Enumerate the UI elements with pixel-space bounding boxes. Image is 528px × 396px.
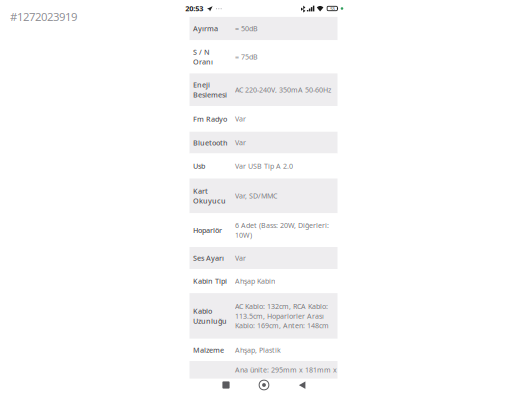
staticText: Var xyxy=(235,253,246,263)
staticText: S / N Oranı xyxy=(193,47,213,67)
staticText: Var xyxy=(235,138,246,147)
staticText: = 50dB xyxy=(235,24,258,33)
staticText: Var xyxy=(235,114,246,124)
staticText: AC Kablo: 132cm, RCA Kablo: 113.5cm, Hop… xyxy=(235,301,329,330)
button[interactable]: Home xyxy=(245,376,283,394)
staticText: 6 Adet (Bass: 20W, Diğerleri: 10W) xyxy=(235,220,329,240)
staticText: Kablo Uzunluğu xyxy=(193,306,227,326)
staticText: Eneji Beslemesi xyxy=(193,80,227,99)
button[interactable]: Back xyxy=(283,376,321,394)
staticText: Ana ünite: 295mm x 181mm x xyxy=(235,365,337,375)
staticText: Var, SD/MMC xyxy=(235,191,277,201)
staticText: Ahşap, Plastik xyxy=(235,345,281,355)
staticText: Hoparlör xyxy=(193,225,222,235)
staticText: Var USB Tip A 2.0 xyxy=(235,161,293,171)
staticText: Kabin Tipi xyxy=(193,276,227,286)
staticText: Malzeme xyxy=(193,345,224,355)
staticText: AC 220-240V, 350mA 50-60Hz xyxy=(235,85,331,94)
staticText: Ahşap Kabin xyxy=(235,276,275,286)
staticText: = 75dB xyxy=(235,52,258,62)
staticText: 20:53 xyxy=(185,3,203,13)
staticText: Ayırma xyxy=(193,24,218,33)
button[interactable]: Recent apps xyxy=(207,376,245,394)
staticText: Usb xyxy=(193,161,205,171)
staticText: Kart Okuyucu xyxy=(193,186,226,206)
staticText: Ses Ayarı xyxy=(193,253,224,263)
staticText: 53 xyxy=(330,6,334,11)
staticText: #1272023919 xyxy=(10,9,77,24)
staticText: Fm Radyo xyxy=(193,114,227,124)
staticText: Bluetooth xyxy=(193,138,228,147)
